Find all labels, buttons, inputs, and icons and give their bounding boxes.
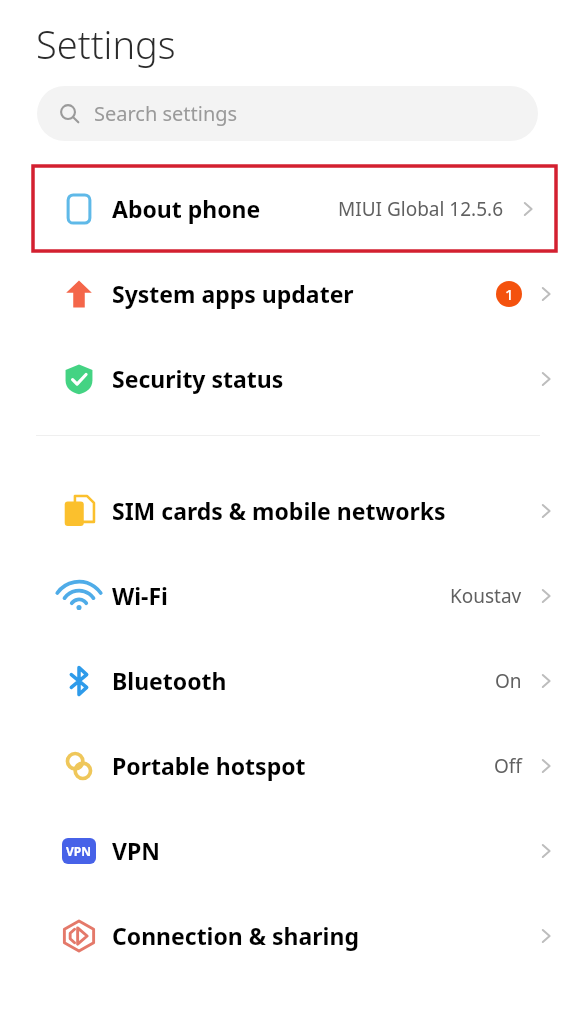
other: System apps updater <box>63 278 95 310</box>
other: Portable hotspot <box>63 750 95 782</box>
staticText: Connection & sharing <box>112 920 359 951</box>
staticText: Portable hotspot <box>112 750 306 781</box>
staticText: Settings <box>36 18 176 70</box>
staticText: 1 <box>505 284 514 304</box>
staticText: Off <box>494 753 522 779</box>
button[interactable]: SIM cards and mobile networks <box>0 468 574 553</box>
button[interactable]: About phone <box>33 166 556 251</box>
other: VPN <box>62 838 96 864</box>
button[interactable]: Bluetooth <box>0 638 574 723</box>
other: About phone <box>63 193 95 225</box>
button[interactable]: Connection and sharing <box>0 893 574 978</box>
button[interactable]: Security status <box>0 336 574 421</box>
staticText: VPN <box>66 843 92 859</box>
other: Security status <box>63 363 95 395</box>
staticText: Search settings <box>94 100 238 127</box>
staticText: MIUI Global 12.5.6 <box>338 196 504 222</box>
staticText: Wi-Fi <box>112 580 168 611</box>
staticText: SIM cards & mobile networks <box>112 495 446 526</box>
staticText: About phone <box>112 193 261 224</box>
staticText: Bluetooth <box>112 665 227 696</box>
staticText: VPN <box>112 835 160 866</box>
other: SIM cards and mobile networks <box>62 494 96 528</box>
button[interactable]: VPN <box>0 808 574 893</box>
staticText: System apps updater <box>112 278 354 309</box>
other: Bluetooth <box>63 665 95 697</box>
other: Wi-Fi <box>62 579 96 613</box>
button[interactable]: Portable hotspot <box>0 723 574 808</box>
staticText: On <box>495 668 522 694</box>
other: Connection and sharing <box>62 919 96 953</box>
staticText: Koustav <box>450 583 522 609</box>
button[interactable]: System apps updater <box>0 251 574 336</box>
button[interactable]: Search settings <box>37 86 538 141</box>
staticText: Security status <box>112 363 284 394</box>
button[interactable]: Wi-Fi <box>0 553 574 638</box>
